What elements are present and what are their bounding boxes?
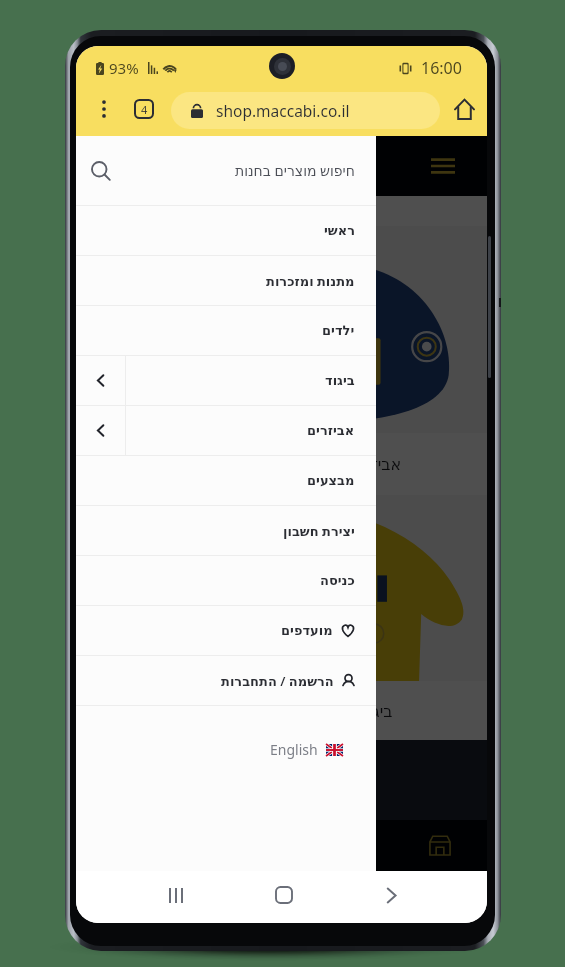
button[interactable]: Home [455, 99, 474, 119]
button[interactable]: Back [369, 873, 413, 917]
staticText: אביזרים [349, 455, 402, 474]
button[interactable]: shop.maccabi.co.il [171, 92, 440, 129]
staticText: ילדים [322, 323, 355, 338]
staticText: shop.maccabi.co.il [216, 100, 350, 121]
button[interactable]: כניסה [76, 556, 376, 605]
button[interactable]: Tabs [135, 100, 153, 118]
button[interactable]: מועדפים [76, 606, 376, 655]
staticText: יצירת חשבון [283, 522, 355, 540]
button[interactable]: More options [93, 99, 115, 119]
button[interactable]: יצירת חשבון [76, 506, 376, 555]
button[interactable]: מתנות ומזכרות [76, 256, 376, 305]
staticText: English [270, 740, 318, 759]
button[interactable]: ביגוד [76, 356, 376, 405]
staticText: ביגוד [325, 373, 355, 388]
button[interactable]: Store [428, 835, 452, 856]
staticText: מועדפים [281, 623, 333, 638]
staticText: ראשי [324, 223, 355, 238]
staticText: 16:00 [421, 57, 462, 79]
staticText: ביגוד [360, 702, 393, 721]
staticText: 93% [109, 58, 139, 78]
staticText: אביזרים [307, 423, 355, 438]
button[interactable]: אביזרים [76, 406, 376, 455]
staticText: הרשמה / התחברות [221, 672, 334, 690]
button[interactable]: Menu [431, 158, 455, 174]
staticText: חיפוש מוצרים בחנות [235, 161, 355, 180]
button[interactable]: English [270, 740, 343, 759]
staticText: כניסה [320, 573, 355, 588]
button[interactable]: מבצעים [76, 456, 376, 505]
staticText: מבצעים [307, 473, 355, 488]
button[interactable]: ילדים [76, 306, 376, 355]
staticText: 4 [141, 102, 148, 117]
button[interactable]: ראשי [76, 206, 376, 255]
staticText: מתנות ומזכרות [266, 272, 355, 290]
button[interactable]: Home [262, 873, 306, 917]
button[interactable]: הרשמה / התחברות [76, 656, 376, 705]
button[interactable]: Recents [154, 873, 198, 917]
button[interactable]: חיפוש מוצרים בחנות [76, 136, 376, 205]
